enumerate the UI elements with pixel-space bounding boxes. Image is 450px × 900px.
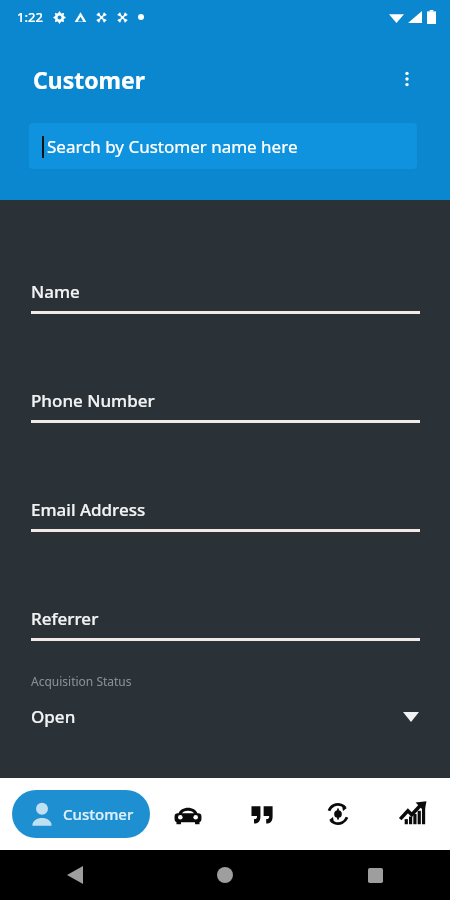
button[interactable]: Back — [0, 850, 150, 900]
button[interactable]: Vehicles — [150, 778, 225, 850]
button[interactable]: Home — [150, 850, 300, 900]
staticText: Search by Customer name here — [47, 135, 298, 158]
staticText: Open — [31, 705, 76, 728]
staticText: Acquisition Status — [31, 673, 132, 689]
button[interactable]: Reports — [375, 778, 450, 850]
button[interactable]: Email Address — [0, 498, 450, 532]
button[interactable]: Quotes — [225, 778, 300, 850]
button[interactable]: Name — [0, 280, 450, 314]
button[interactable]: More options — [390, 62, 424, 96]
button[interactable]: Phone Number — [0, 389, 450, 423]
staticText: Customer — [63, 804, 134, 824]
button[interactable]: Referrer — [0, 607, 450, 641]
staticText: Customer — [33, 64, 146, 95]
button[interactable]: Acquisition Status — [0, 673, 450, 728]
staticText: Referrer — [31, 607, 99, 630]
staticText: Name — [31, 280, 80, 303]
staticText: Email Address — [31, 498, 146, 521]
staticText: 1:22 — [17, 8, 43, 26]
button[interactable]: Customer — [12, 790, 150, 838]
button[interactable]: Recent apps — [300, 850, 450, 900]
button[interactable]: Transactions — [300, 778, 375, 850]
staticText: Phone Number — [31, 389, 155, 412]
button[interactable]: Search by Customer name here — [29, 123, 417, 169]
